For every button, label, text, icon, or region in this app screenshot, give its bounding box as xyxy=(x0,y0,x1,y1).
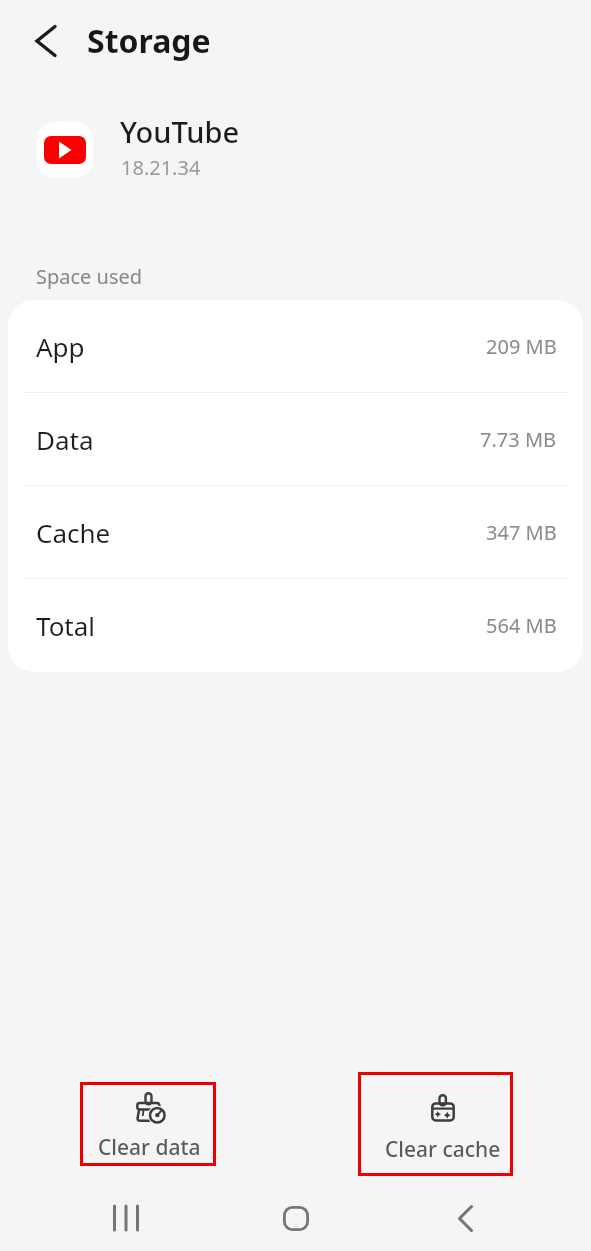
staticText: Data xyxy=(36,422,94,457)
button[interactable] xyxy=(95,1188,156,1248)
staticText: Space used xyxy=(36,263,143,290)
staticText: Clear data xyxy=(98,1133,201,1162)
button[interactable]: App xyxy=(8,300,583,392)
staticText: Clear cache xyxy=(385,1135,501,1164)
button[interactable] xyxy=(265,1188,326,1248)
button[interactable]: Data xyxy=(8,393,583,485)
button[interactable] xyxy=(435,1188,496,1248)
staticText: 347 MB xyxy=(486,519,557,546)
staticText: 209 MB xyxy=(486,333,557,360)
staticText: App xyxy=(36,329,85,364)
staticText: Total xyxy=(36,608,96,643)
staticText: 18.21.34 xyxy=(121,154,201,181)
button[interactable] xyxy=(24,14,68,68)
staticText: YouTube xyxy=(120,112,240,151)
staticText: 564 MB xyxy=(486,612,557,639)
button[interactable]: Cache xyxy=(8,486,583,578)
button[interactable]: Total xyxy=(8,579,583,671)
staticText: Storage xyxy=(87,19,211,63)
staticText: 7.73 MB xyxy=(480,426,557,453)
button[interactable]: Clear data xyxy=(84,1092,214,1166)
button[interactable]: Clear cache xyxy=(378,1094,508,1168)
staticText: Cache xyxy=(36,515,111,550)
